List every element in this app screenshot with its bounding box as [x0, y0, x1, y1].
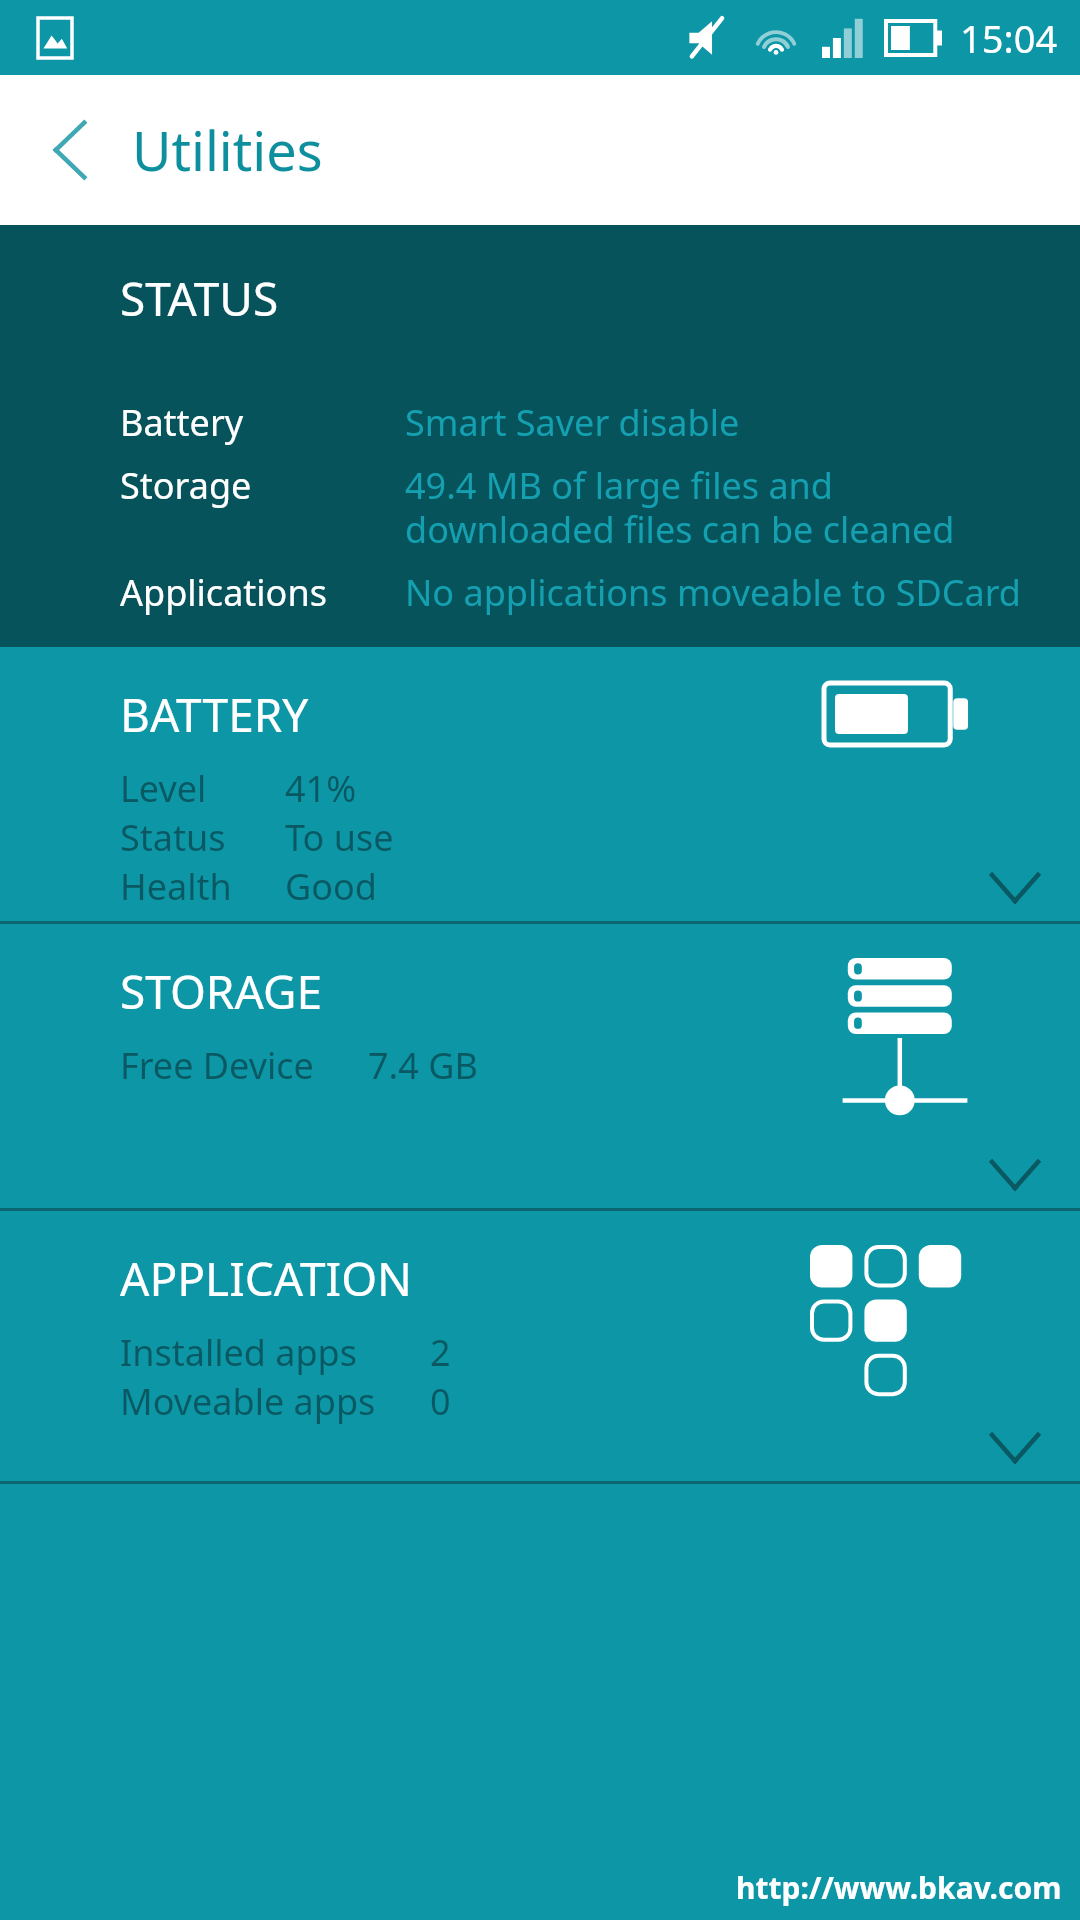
other: Expand BATTERY [992, 875, 1038, 901]
staticText: STATUS [120, 267, 279, 330]
staticText: Utilities [132, 113, 323, 187]
staticText: Health [120, 862, 232, 911]
button[interactable]: STORAGE [0, 924, 1080, 1208]
staticText: 0 [430, 1377, 451, 1426]
staticText: 41% [285, 764, 357, 813]
staticText: APPLICATION [120, 1247, 413, 1310]
button[interactable]: APPLICATION [0, 1211, 1080, 1481]
button[interactable]: STATUS [0, 225, 1080, 647]
staticText: Installed apps [120, 1328, 357, 1377]
staticText: 15:04 [960, 12, 1058, 64]
staticText: Good [285, 862, 377, 911]
staticText: Level [120, 764, 207, 813]
button[interactable]: BATTERY [0, 647, 1080, 921]
staticText: 7.4 GB [368, 1041, 478, 1090]
staticText: Applications [120, 568, 327, 617]
staticText: Status [120, 813, 226, 862]
staticText: BATTERY [120, 683, 309, 746]
staticText: No applications moveable to SDCard [405, 568, 1040, 617]
other: Expand STORAGE [992, 1162, 1038, 1188]
other: Expand APPLICATION [992, 1435, 1038, 1461]
staticText: Battery [120, 398, 244, 447]
staticText: To use [285, 813, 394, 862]
staticText: 2 [430, 1328, 451, 1377]
staticText: Smart Saver disable [405, 398, 1040, 447]
staticText: Storage [120, 461, 252, 510]
staticText: Free Device [120, 1041, 314, 1090]
staticText: http://www.bkav.com [736, 1867, 1062, 1908]
staticText: Moveable apps [120, 1377, 376, 1426]
staticText: 49.4 MB of large files and downloaded fi… [405, 461, 1040, 554]
staticText: STORAGE [120, 960, 322, 1023]
button[interactable]: Back [30, 110, 110, 190]
